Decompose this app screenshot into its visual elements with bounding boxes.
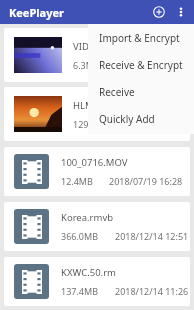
button[interactable]: VID_2	[4, 28, 190, 82]
staticText: Quickly Add	[99, 112, 155, 126]
button[interactable]: Receive & Encrypt	[88, 51, 194, 78]
staticText: 2018/12/14 11:26	[115, 285, 189, 297]
button[interactable]: Korea.rmvb	[4, 202, 190, 251]
staticText: KXWC.50.rm	[61, 266, 116, 279]
staticText: Receive & Encrypt	[99, 58, 183, 72]
staticText: KeePlayer	[9, 5, 64, 20]
staticText: 137.4MB	[61, 285, 99, 297]
staticText: 2018/12/14 12:51	[115, 230, 189, 242]
staticText: 2018/07/19 16:28	[109, 175, 183, 187]
button[interactable]: 100_0716.MOV	[4, 147, 190, 196]
button[interactable]: Import & Encrypt	[88, 24, 194, 51]
staticText: Import & Encrypt	[99, 31, 180, 45]
staticText: 12.4MB	[61, 175, 93, 187]
button[interactable]: More options	[172, 3, 190, 21]
staticText: Receive	[99, 85, 135, 99]
staticText: 1292.	[73, 118, 97, 130]
button[interactable]: Add	[149, 2, 169, 22]
staticText: VID_2	[73, 40, 99, 53]
button[interactable]: KXWC.50.rm	[4, 257, 190, 306]
button[interactable]: HLM.	[4, 87, 190, 141]
staticText: Korea.rmvb	[61, 211, 114, 224]
staticText: 6.3MB	[73, 59, 100, 71]
staticText: 366.0MB	[61, 230, 99, 242]
staticText: HLM.	[73, 99, 97, 112]
staticText: 100_0716.MOV	[61, 156, 128, 169]
button[interactable]: Quickly Add	[88, 105, 194, 132]
button[interactable]: Receive	[88, 78, 194, 105]
